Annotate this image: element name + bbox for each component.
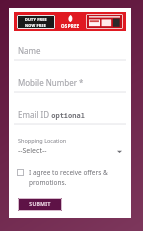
staticText: I agree to receive offers & promotions. <box>29 168 108 187</box>
staticText: SUBMIT <box>29 201 51 208</box>
button[interactable]: Name <box>14 40 126 60</box>
button[interactable]: Mobile Number * <box>14 72 126 92</box>
staticText: Name <box>18 45 41 56</box>
staticText: Shopping Location <box>18 137 67 144</box>
button[interactable]: I agree to receive offers & promotions. <box>17 168 123 187</box>
staticText: --Select-- <box>18 146 47 156</box>
staticText: NOW FREE <box>25 23 47 28</box>
button[interactable]: Duty free promotional banner <box>14 12 126 31</box>
staticText: DUTY FREE <box>25 17 47 22</box>
button[interactable]: SUBMIT <box>18 198 62 211</box>
button[interactable]: Shopping Location selector <box>18 137 122 156</box>
staticText: OSPREE <box>61 23 80 29</box>
button[interactable]: Email ID optional <box>14 104 126 124</box>
staticText: Mobile Number * <box>18 77 84 88</box>
staticText: Email ID optional <box>18 109 85 120</box>
